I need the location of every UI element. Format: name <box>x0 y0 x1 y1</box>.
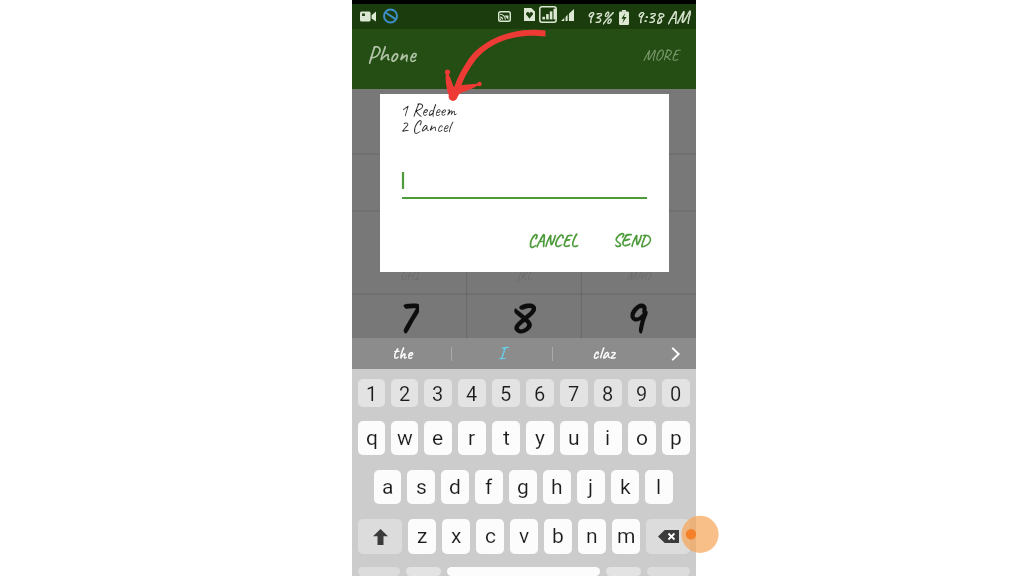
button[interactable]: n <box>578 519 606 554</box>
staticText: n <box>586 524 598 549</box>
button[interactable]: 3 <box>424 379 452 407</box>
button[interactable]: claz <box>553 338 653 369</box>
staticText: 3 <box>432 382 444 405</box>
staticText: 8 <box>602 382 614 405</box>
staticText: MORE <box>643 45 680 65</box>
button[interactable]: g <box>509 470 537 504</box>
staticText: x <box>451 524 462 549</box>
button[interactable]: 2 <box>391 379 418 407</box>
button[interactable]: i <box>594 421 622 455</box>
button[interactable]: 9 <box>628 379 656 407</box>
staticText: d <box>449 475 461 500</box>
button[interactable]: 8 <box>466 290 581 338</box>
staticText: CANCEL <box>528 230 578 251</box>
staticText: r <box>468 426 476 451</box>
staticText: 0 <box>670 382 682 405</box>
button[interactable]: 9 <box>581 290 696 338</box>
button[interactable]: Shift <box>358 519 402 554</box>
staticText: e <box>432 426 444 451</box>
button[interactable]: t <box>492 421 520 455</box>
button[interactable]: 7 <box>352 290 466 338</box>
button[interactable]: 4 <box>458 379 486 407</box>
button[interactable]: k <box>611 470 639 504</box>
staticText: h <box>551 475 563 500</box>
button[interactable] <box>606 567 641 576</box>
staticText: GHI <box>400 268 419 284</box>
button[interactable]: 5 <box>492 379 520 407</box>
staticText: c <box>485 524 496 549</box>
button[interactable]: 6 <box>526 379 554 407</box>
button[interactable]: x <box>442 519 470 554</box>
button[interactable]: I <box>452 338 552 369</box>
button[interactable]: v <box>510 519 538 554</box>
staticText: 93% <box>585 6 612 29</box>
staticText: JKL <box>516 268 532 284</box>
button[interactable]: y <box>526 421 554 455</box>
staticText: k <box>620 475 631 500</box>
staticText: i <box>605 426 611 451</box>
staticText: 7 <box>568 382 580 405</box>
button[interactable]: e <box>424 421 452 455</box>
staticText: l <box>656 475 662 500</box>
button[interactable]: f <box>475 470 503 504</box>
button[interactable]: m <box>612 519 640 554</box>
staticText: the <box>392 342 412 365</box>
button[interactable]: SEND <box>605 223 658 258</box>
button[interactable]: u <box>560 421 588 455</box>
button[interactable]: 8 <box>594 379 622 407</box>
staticText: b <box>552 524 564 549</box>
staticText: a <box>382 475 394 500</box>
button[interactable]: c <box>476 519 504 554</box>
staticText: MNO <box>627 268 651 284</box>
button[interactable]: s <box>407 470 435 504</box>
button[interactable]: p <box>662 421 690 455</box>
button[interactable]: CANCEL <box>520 223 586 258</box>
staticText: SEND <box>613 230 650 251</box>
button[interactable]: q <box>358 421 385 455</box>
staticText: z <box>417 524 428 549</box>
button[interactable]: Backspace <box>646 519 690 554</box>
staticText: 2 <box>399 382 411 405</box>
staticText: claz <box>592 342 615 365</box>
staticText: 7 <box>400 290 419 338</box>
staticText: 9 <box>628 290 649 338</box>
staticText: 9:38 AM <box>635 6 690 29</box>
staticText: v <box>519 524 530 549</box>
staticText: I <box>498 342 506 365</box>
button[interactable] <box>447 567 600 576</box>
button[interactable]: a <box>374 470 401 504</box>
button[interactable] <box>406 567 441 576</box>
staticText: 1 <box>366 382 378 405</box>
staticText: u <box>568 426 580 451</box>
button[interactable]: o <box>628 421 656 455</box>
button[interactable]: b <box>544 519 572 554</box>
button[interactable]: 0 <box>662 379 690 407</box>
button[interactable]: l <box>645 470 673 504</box>
button[interactable]: h <box>543 470 571 504</box>
button[interactable]: z <box>408 519 436 554</box>
staticText: w <box>397 426 413 451</box>
button[interactable]: More suggestions <box>653 338 696 369</box>
staticText: 9 <box>636 382 648 405</box>
button[interactable] <box>402 170 647 202</box>
button[interactable]: the <box>352 338 451 369</box>
button[interactable]: j <box>577 470 605 504</box>
button[interactable]: 1 <box>358 379 385 407</box>
staticText: m <box>617 524 636 549</box>
staticText: j <box>588 475 594 500</box>
button[interactable]: 7 <box>560 379 588 407</box>
staticText: Phone <box>367 39 416 69</box>
button[interactable]: r <box>458 421 486 455</box>
staticText: 1 Redeem 2 Cancel <box>400 99 456 137</box>
staticText: f <box>485 475 493 500</box>
staticText: 8 <box>511 290 536 338</box>
staticText: 4 <box>466 382 478 405</box>
button[interactable]: MORE <box>635 38 688 72</box>
staticText: s <box>416 475 427 500</box>
button[interactable]: w <box>391 421 418 455</box>
staticText: p <box>670 426 682 451</box>
button[interactable]: d <box>441 470 469 504</box>
staticText: y <box>535 426 545 451</box>
